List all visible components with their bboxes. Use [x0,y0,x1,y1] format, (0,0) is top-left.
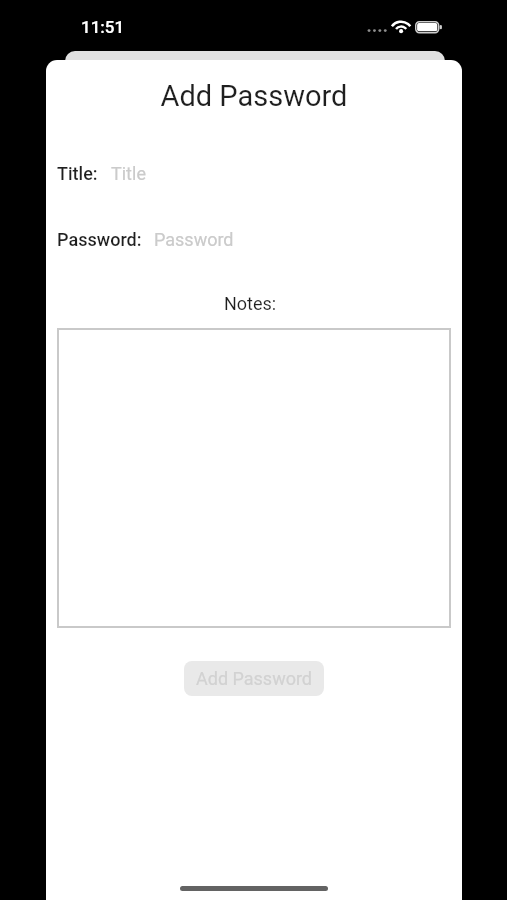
staticText: Title: [57,163,98,184]
staticText: Password [154,229,234,250]
other: Battery [415,20,443,34]
other: Cellular signal [367,28,388,34]
staticText: Password: [57,229,142,250]
button[interactable]: Add Password [184,661,324,696]
staticText: Title [111,163,146,184]
staticText: Add Password [196,668,313,689]
other: Wi-Fi [390,18,412,36]
staticText: Add Password [46,79,462,113]
button[interactable]: Notes [57,328,451,628]
staticText: 11:51 [81,17,125,37]
staticText: Notes: [46,293,458,314]
button[interactable]: Title [111,162,461,184]
button[interactable]: Password [154,228,461,250]
